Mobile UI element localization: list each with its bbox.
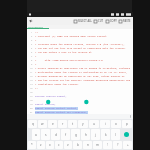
staticText: q	[32, 122, 34, 126]
staticText: !	[107, 143, 108, 147]
button[interactable]: z	[37, 141, 45, 149]
button[interactable]: p	[122, 120, 132, 128]
staticText: y	[82, 122, 84, 126]
button[interactable]: !	[103, 141, 112, 149]
button[interactable]: y	[78, 120, 88, 128]
staticText: b	[77, 143, 79, 147]
staticText: import android.content.Context;	[35, 107, 78, 110]
staticText: k	[105, 133, 107, 137]
staticText: m	[96, 143, 99, 147]
button[interactable]: l	[111, 129, 120, 140]
button[interactable]: e	[48, 120, 57, 128]
button[interactable]: Done	[27, 17, 35, 25]
button[interactable]: j	[91, 129, 100, 140]
button[interactable]: t	[68, 120, 77, 128]
staticText: 13	[30, 79, 33, 82]
button[interactable]: k	[101, 129, 110, 140]
staticText: 7	[31, 55, 33, 58]
staticText: 2	[31, 35, 33, 38]
staticText: +	[127, 143, 129, 147]
staticText: import android.content.res.TypedArray;	[35, 111, 88, 114]
button[interactable]: v	[64, 141, 72, 149]
staticText: *	[31, 143, 33, 147]
button[interactable]: COPY	[106, 17, 117, 25]
staticText: */	[35, 87, 38, 90]
staticText: 15	[30, 87, 33, 90]
staticText: package android.widget;	[35, 95, 67, 98]
staticText: g	[75, 133, 77, 137]
staticText: c	[58, 143, 60, 147]
button[interactable]: d	[51, 129, 60, 140]
button[interactable]: s	[41, 129, 50, 140]
staticText: n	[87, 143, 89, 147]
staticText: i	[105, 122, 106, 126]
staticText: /*	[35, 31, 38, 34]
staticText: * See the License for the specific langu…	[35, 79, 131, 82]
staticText: a	[35, 133, 37, 137]
staticText: j	[95, 133, 96, 137]
staticText: * WITHOUT WARRANTIES OR CONDITIONS OF AN…	[35, 75, 125, 78]
staticText: 14	[30, 83, 33, 86]
staticText: 21	[30, 111, 33, 114]
button[interactable]: c	[55, 141, 63, 149]
staticText: 20	[30, 107, 33, 110]
staticText: l	[115, 133, 116, 137]
button[interactable]: x	[46, 141, 54, 149]
staticText: ?	[117, 143, 119, 147]
staticText: 6	[31, 51, 33, 54]
button[interactable]: o	[111, 120, 121, 128]
staticText: r	[62, 122, 64, 126]
button[interactable]: More options	[127, 114, 133, 119]
staticText: 1	[31, 31, 33, 34]
button[interactable]: CUT	[94, 17, 104, 25]
button[interactable]: b	[73, 141, 82, 149]
staticText: CUT	[98, 19, 104, 23]
button[interactable]: u	[89, 120, 99, 128]
staticText: f	[65, 133, 67, 137]
button[interactable]: ?	[113, 141, 122, 149]
button[interactable]: SELECT ALL	[74, 17, 92, 25]
staticText: * Copyright (C) 2006 The Android Open So…	[35, 35, 107, 38]
staticText: 16	[30, 91, 33, 94]
staticText: 17	[30, 95, 33, 98]
staticText: s	[45, 133, 47, 137]
staticText: 19	[30, 103, 33, 106]
staticText: 11	[30, 71, 33, 74]
staticText: t	[72, 122, 74, 126]
button[interactable]: n	[83, 141, 92, 149]
button[interactable]: PASTE	[119, 17, 131, 25]
staticText: *	[35, 55, 37, 58]
staticText: SELECT ALL	[78, 19, 92, 23]
button[interactable]: g	[71, 129, 80, 140]
button[interactable]: m	[93, 141, 102, 149]
staticText: h	[85, 133, 87, 137]
button[interactable]: +	[123, 141, 132, 149]
button[interactable]: Enter	[121, 129, 132, 140]
button[interactable]: q	[28, 120, 37, 128]
staticText: 3	[31, 39, 33, 42]
button[interactable]: TextView.java	[27, 25, 49, 29]
staticText: 18	[30, 99, 33, 102]
button[interactable]: h	[81, 129, 90, 140]
staticText: import android;	[35, 103, 56, 106]
staticText: 4	[31, 43, 33, 46]
staticText: z	[40, 143, 42, 147]
staticText: p	[126, 122, 128, 126]
button[interactable]: r	[58, 120, 67, 128]
button[interactable]: *	[28, 141, 36, 149]
button[interactable]: a	[32, 129, 40, 140]
staticText: COPY	[110, 19, 117, 23]
staticText: 5	[31, 47, 33, 50]
button[interactable]: w	[38, 120, 47, 128]
staticText: TextView.java	[28, 25, 43, 28]
button[interactable]: i	[100, 120, 110, 128]
staticText: x	[49, 143, 51, 147]
staticText: * http://www.apache.org/licenses/LICENSE…	[35, 59, 103, 62]
staticText: o	[115, 122, 117, 126]
button[interactable]: f	[61, 129, 70, 140]
staticText: 8	[31, 59, 33, 62]
staticText: d	[55, 133, 57, 137]
